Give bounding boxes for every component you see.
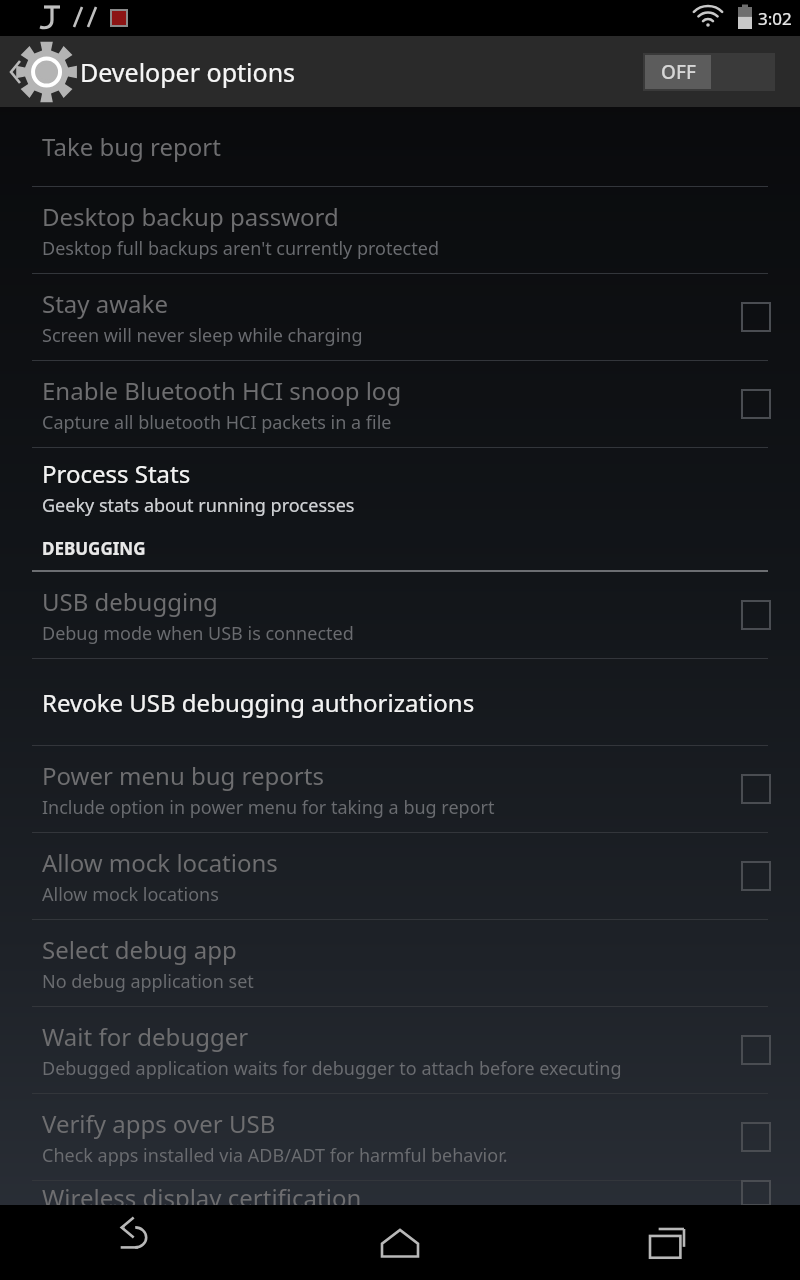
staticText: Process Stats — [42, 457, 191, 490]
button[interactable]: Process Stats — [0, 448, 800, 526]
staticText: USB debugging — [42, 585, 218, 618]
staticText: No debug application set — [42, 969, 254, 994]
staticText: Stay awake — [42, 287, 168, 320]
staticText: Developer options — [80, 55, 296, 89]
button[interactable]: Power menu bug reports — [0, 746, 800, 832]
staticText: Check apps installed via ADB/ADT for har… — [42, 1143, 508, 1168]
button[interactable]: Toggle developer options off — [643, 53, 775, 91]
other: Verify apps over USB checkbox — [742, 1123, 770, 1151]
other: Power menu bug reports checkbox — [742, 775, 770, 803]
button[interactable]: Wait for debugger — [0, 1007, 800, 1093]
button[interactable]: Developer options — [0, 36, 304, 107]
other: USB debugging checkbox — [742, 601, 770, 629]
staticText: Wait for debugger — [42, 1020, 249, 1053]
other: Enable Bluetooth HCI snoop log checkbox — [742, 390, 770, 418]
staticText: Wireless display certification — [42, 1181, 362, 1205]
staticText: Power menu bug reports — [42, 759, 324, 792]
button[interactable]: Revoke USB debugging authorizations — [0, 659, 800, 745]
button[interactable]: Allow mock locations — [0, 833, 800, 919]
button[interactable]: Verify apps over USB — [0, 1094, 800, 1180]
button[interactable]: Stay awake — [0, 274, 800, 360]
other: Wireless display certification checkbox — [742, 1181, 770, 1205]
staticText: Geeky stats about running processes — [42, 493, 355, 518]
staticText: Debug mode when USB is connected — [42, 621, 354, 646]
staticText: DEBUGGING — [42, 537, 146, 560]
button[interactable]: Select debug app — [0, 920, 800, 1006]
staticText: Include option in power menu for taking … — [42, 795, 495, 820]
staticText: Revoke USB debugging authorizations — [42, 686, 475, 719]
staticText: Allow mock locations — [42, 882, 219, 907]
staticText: Desktop backup password — [42, 200, 339, 233]
other: Stay awake checkbox — [742, 303, 770, 331]
button[interactable]: Take bug report — [0, 107, 800, 186]
staticText: Select debug app — [42, 933, 237, 966]
button[interactable]: Desktop backup password — [0, 187, 800, 273]
staticText: Enable Bluetooth HCI snoop log — [42, 374, 402, 407]
staticText: OFF — [661, 59, 696, 85]
button[interactable]: Back — [0, 1205, 266, 1280]
staticText: Screen will never sleep while charging — [42, 323, 363, 348]
staticText: Take bug report — [42, 130, 221, 163]
staticText: Desktop full backups aren't currently pr… — [42, 236, 439, 261]
staticText: Debugged application waits for debugger … — [42, 1056, 622, 1081]
staticText: Allow mock locations — [42, 846, 278, 879]
other: Allow mock locations checkbox — [742, 862, 770, 890]
other: Wait for debugger checkbox — [742, 1036, 770, 1064]
staticText: Verify apps over USB — [42, 1107, 276, 1140]
button[interactable]: Recent apps — [533, 1205, 800, 1280]
staticText: 3:02 — [758, 7, 792, 30]
button[interactable]: Home — [266, 1205, 533, 1280]
staticText: Capture all bluetooth HCI packets in a f… — [42, 410, 392, 435]
button[interactable]: USB debugging — [0, 572, 800, 658]
button[interactable]: Wireless display certification — [0, 1181, 800, 1205]
button[interactable]: Enable Bluetooth HCI snoop log — [0, 361, 800, 447]
